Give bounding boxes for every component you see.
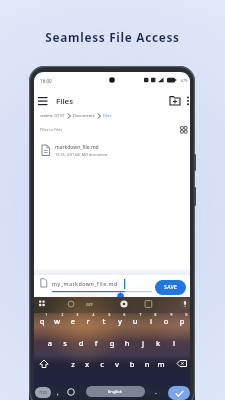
- staticText: realme GT 5T: [40, 113, 65, 118]
- button[interactable]: SAVE: [155, 280, 186, 295]
- staticText: 5: [107, 313, 112, 317]
- staticText: c: [97, 359, 107, 369]
- staticText: p: [177, 316, 187, 326]
- staticText: markdown_file.md: [55, 144, 99, 151]
- staticText: ?123: [39, 390, 47, 395]
- staticText: GIF: [86, 302, 93, 308]
- staticText: e: [68, 316, 78, 326]
- staticText: ,: [57, 389, 59, 397]
- staticText: .: [155, 388, 157, 396]
- staticText: 16:00: [40, 78, 52, 84]
- staticText: y: [115, 316, 125, 326]
- staticText: 8: [153, 313, 158, 317]
- staticText: 7: [138, 313, 143, 317]
- staticText: d: [76, 338, 86, 348]
- staticText: g: [107, 338, 117, 348]
- staticText: my_markdown_file.md: [52, 280, 118, 287]
- staticText: z: [68, 359, 78, 369]
- staticText: 4: [91, 313, 96, 317]
- staticText: 1: [44, 313, 49, 317]
- staticText: t: [99, 316, 109, 326]
- staticText: w: [52, 316, 62, 326]
- staticText: k: [153, 338, 163, 348]
- staticText: Files: [103, 113, 112, 118]
- staticText: SAVE: [164, 284, 178, 291]
- staticText: 6: [122, 313, 127, 317]
- staticText: Documents: [73, 113, 95, 118]
- staticText: i: [146, 316, 156, 326]
- staticText: v: [112, 359, 122, 369]
- staticText: j: [138, 338, 148, 348]
- staticText: o: [161, 316, 171, 326]
- staticText: n: [142, 359, 152, 369]
- staticText: r: [83, 316, 93, 326]
- staticText: q: [37, 316, 47, 326]
- staticText: x: [82, 359, 92, 369]
- button[interactable]: Files: [34, 92, 190, 110]
- staticText: 0: [184, 313, 189, 317]
- staticText: Files in Files: [40, 127, 63, 132]
- staticText: 9: [169, 313, 174, 317]
- staticText: 3: [75, 313, 80, 317]
- staticText: 67%: [181, 78, 188, 83]
- button[interactable]: ?123: [35, 387, 51, 398]
- button[interactable]: [168, 386, 190, 400]
- staticText: a: [45, 338, 55, 348]
- staticText: 15:16, 4.61 kB, MD document: [55, 152, 108, 157]
- staticText: m: [156, 359, 166, 369]
- staticText: b: [127, 359, 137, 369]
- staticText: u: [130, 316, 140, 326]
- staticText: Files: [56, 96, 74, 107]
- staticText: f: [91, 338, 101, 348]
- staticText: Seamless File Access: [0, 29, 225, 45]
- button[interactable]: realme GT 5T: [40, 111, 112, 120]
- button[interactable]: my_markdown_file.md: [34, 275, 190, 297]
- button[interactable]: markdown_file.md: [34, 141, 190, 165]
- button[interactable]: English: [86, 386, 145, 397]
- staticText: s: [60, 338, 70, 348]
- staticText: 2: [60, 313, 65, 317]
- staticText: English: [108, 389, 123, 395]
- staticText: h: [122, 338, 132, 348]
- staticText: l: [169, 338, 179, 348]
